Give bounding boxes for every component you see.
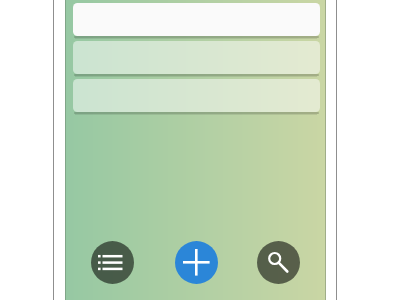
button[interactable]: [257, 241, 300, 284]
button[interactable]: [91, 241, 134, 284]
button[interactable]: [73, 41, 320, 74]
button[interactable]: [175, 241, 218, 284]
button[interactable]: [73, 79, 320, 112]
button[interactable]: [73, 3, 320, 36]
